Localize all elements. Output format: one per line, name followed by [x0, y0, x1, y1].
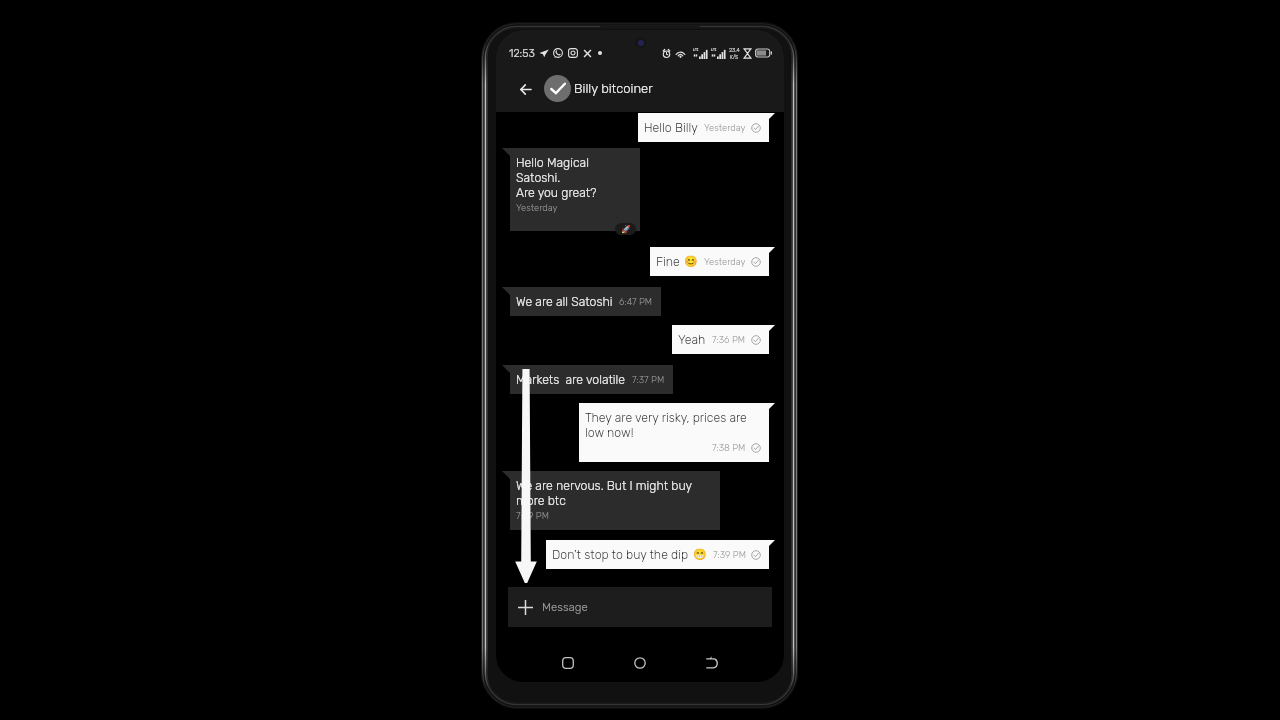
staticText: 7:38 PM: [712, 442, 746, 453]
button[interactable]: Back: [696, 647, 728, 679]
staticText: Hello Billy: [644, 120, 698, 135]
staticText: Markets are volatile: [516, 372, 626, 387]
button[interactable]: Message: [508, 587, 772, 627]
staticText: Fine: [656, 254, 680, 269]
button[interactable]: Home: [624, 647, 656, 679]
staticText: 23.4: [729, 47, 740, 54]
button[interactable]: Back: [514, 78, 536, 100]
staticText: 7:39 PM: [516, 510, 549, 521]
staticText: Yesterday: [704, 122, 746, 133]
button[interactable]: Don’t stop to buy the dip: [546, 540, 769, 569]
staticText: Yesterday: [516, 202, 558, 213]
button[interactable]: They are very risky, prices are low now!: [579, 403, 769, 462]
button[interactable]: We are nervous. But I might buy more btc: [510, 471, 720, 530]
staticText: 7:37 PM: [632, 374, 665, 385]
button[interactable]: [544, 75, 571, 102]
button[interactable]: Fine: [650, 247, 769, 276]
staticText: Hello Magical Satoshi. Are you great?: [516, 155, 597, 200]
staticText: We are nervous. But I might buy more btc: [516, 478, 693, 508]
button[interactable]: Recents: [552, 647, 584, 679]
staticText: Yesterday: [704, 256, 746, 267]
button[interactable]: Yeah: [672, 325, 769, 354]
staticText: We are all Satoshi: [516, 294, 613, 309]
button[interactable]: Markets are volatile: [510, 365, 673, 394]
button[interactable]: Hello Billy: [638, 113, 769, 142]
staticText: Don’t stop to buy the dip: [552, 547, 689, 562]
staticText: 6:47 PM: [619, 296, 653, 307]
staticText: 7:39 PM: [713, 549, 746, 560]
staticText: They are very risky, prices are low now!: [585, 410, 747, 440]
button[interactable]: We are all Satoshi: [510, 287, 661, 316]
staticText: 😁: [693, 548, 707, 561]
staticText: K/S: [730, 54, 739, 60]
staticText: Billy bitcoiner: [574, 81, 653, 96]
staticText: 🚀: [621, 225, 631, 234]
button[interactable]: Hello Magical Satoshi. Are you great?: [510, 148, 640, 231]
staticText: 😊: [684, 255, 698, 268]
staticText: 7:36 PM: [712, 334, 746, 345]
staticText: Yeah: [678, 332, 706, 347]
staticText: Message: [542, 600, 588, 614]
staticText: 12:53: [509, 47, 535, 60]
